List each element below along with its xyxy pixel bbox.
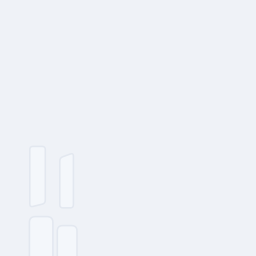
button[interactable]: Column 2: [60, 153, 73, 208]
button[interactable]: Column 4: [57, 226, 77, 256]
button[interactable]: Column 1: [30, 146, 45, 207]
button[interactable]: Column 3: [29, 217, 53, 256]
